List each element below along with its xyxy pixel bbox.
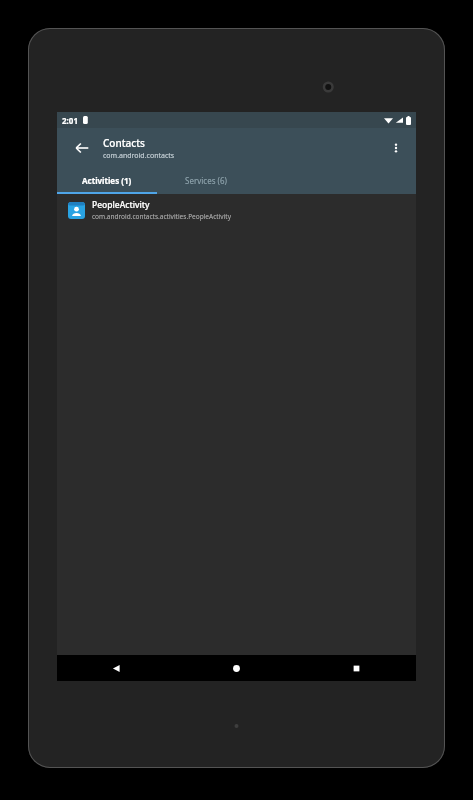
staticText: Contacts	[103, 136, 145, 150]
button[interactable]: More options	[384, 136, 408, 160]
staticText: com.android.contacts	[103, 151, 175, 161]
staticText: 2:01	[62, 115, 78, 126]
staticText: PeopleActivity	[92, 199, 150, 211]
button[interactable]: PeopleActivity	[57, 194, 416, 226]
staticText: Services (6)	[185, 175, 227, 186]
button[interactable]: Activities (1)	[57, 168, 156, 192]
button[interactable]: Services (6)	[156, 168, 256, 192]
staticText: com.android.contacts.activities.PeopleAc…	[92, 212, 231, 221]
staticText: Activities (1)	[82, 175, 132, 186]
button[interactable]: Recents	[296, 655, 416, 681]
button[interactable]: Back	[57, 655, 176, 681]
button[interactable]: Back	[69, 135, 95, 161]
button[interactable]: Home	[176, 655, 296, 681]
